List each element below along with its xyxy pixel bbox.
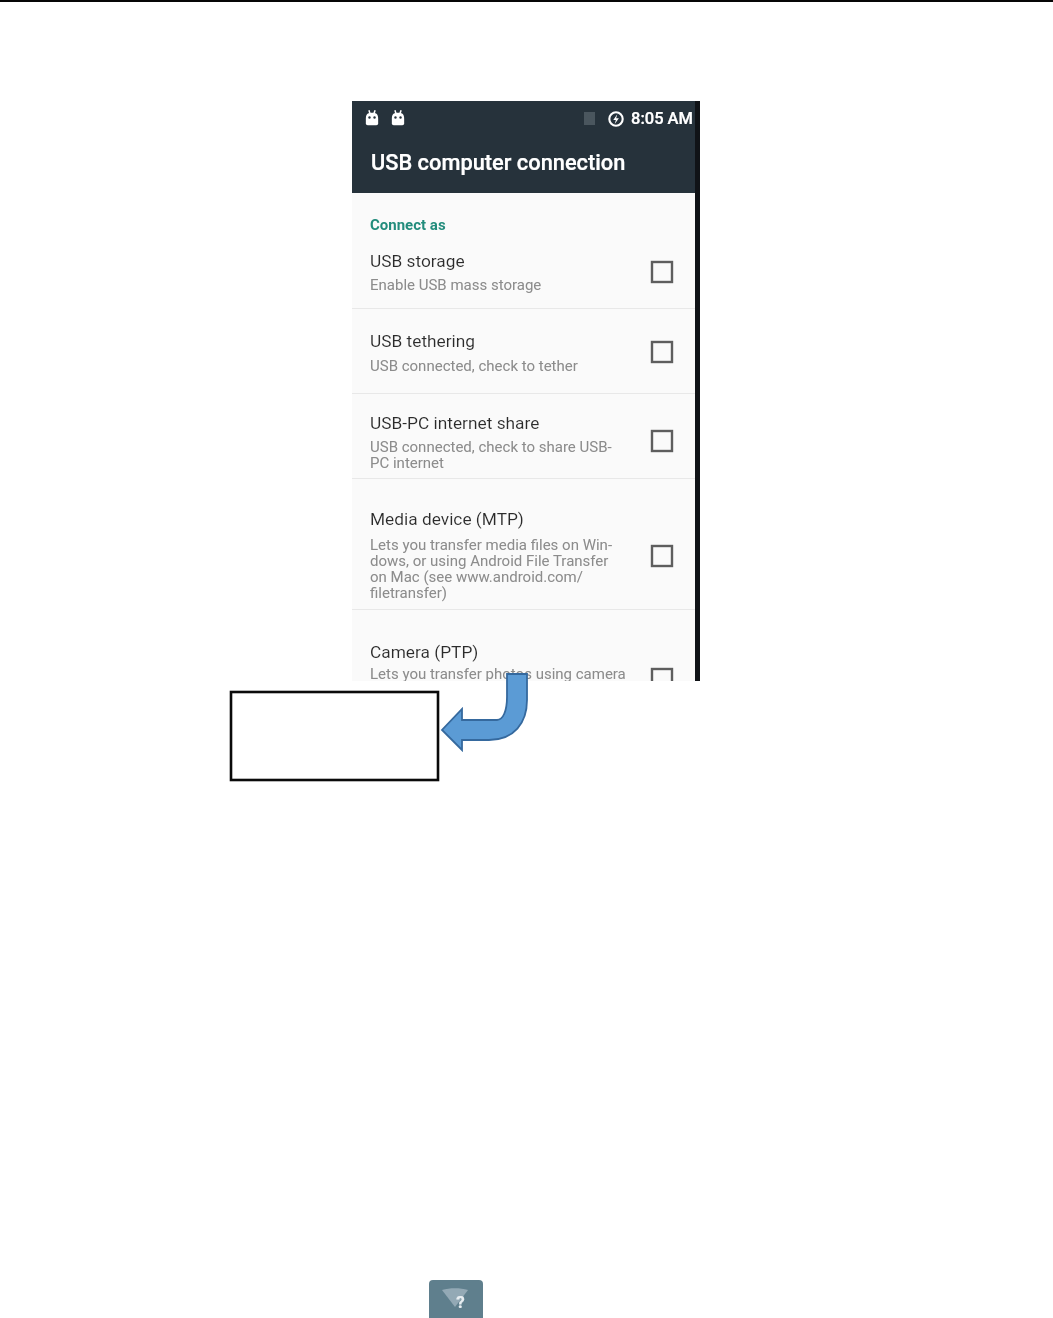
staticText: Connect as (370, 216, 446, 234)
staticText: ? (456, 1292, 465, 1312)
button[interactable]: Camera (PTP) (352, 610, 700, 681)
button[interactable]: Media device (MTP) (352, 479, 700, 609)
button[interactable]: Wi-Fi help (429, 1280, 483, 1318)
button[interactable]: USB-PC internet share (352, 394, 700, 478)
button[interactable]: USB tethering (352, 309, 700, 393)
staticText: USB connected, check to share USB- PC in… (370, 438, 638, 471)
staticText: Lets you transfer media files on Win- do… (370, 536, 638, 601)
staticText: Enable USB mass storage (370, 276, 638, 294)
staticText: Camera (PTP) (370, 642, 479, 662)
staticText: 8:05 AM (631, 109, 694, 128)
button[interactable]: USB storage (352, 242, 700, 308)
staticText: USB tethering (370, 331, 476, 351)
staticText: Lets you transfer photos using camera (370, 665, 638, 681)
staticText: USB connected, check to tether (370, 357, 638, 375)
staticText: USB storage (370, 251, 465, 271)
staticText: USB computer connection (371, 150, 626, 176)
staticText: USB-PC internet share (370, 413, 540, 433)
staticText: Media device (MTP) (370, 509, 524, 529)
